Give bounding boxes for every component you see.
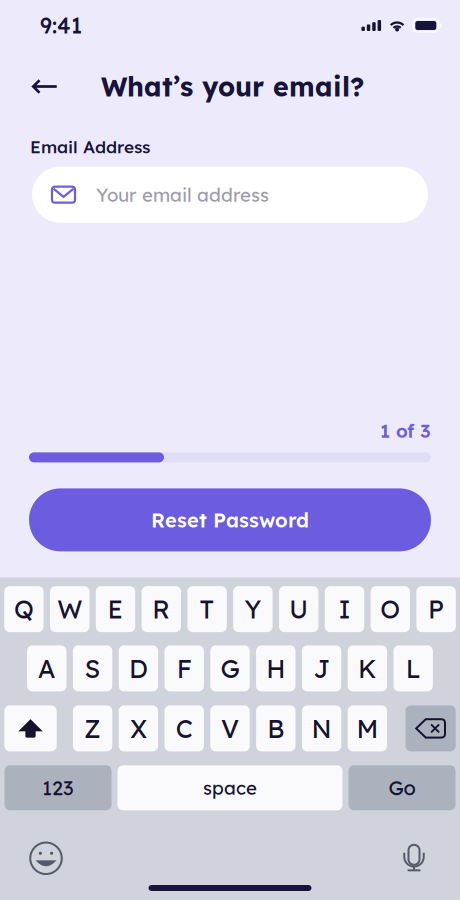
button[interactable]: G (210, 645, 250, 691)
staticText: S (85, 653, 101, 684)
staticText: V (221, 713, 239, 744)
button[interactable]: T (187, 586, 227, 632)
staticText: Your email address (96, 183, 269, 206)
staticText: Reset Password (151, 507, 309, 532)
button[interactable]: R (142, 586, 181, 632)
staticText: C (176, 713, 193, 744)
button[interactable]: V (210, 705, 250, 751)
button[interactable]: L (393, 645, 433, 691)
button[interactable]: O (371, 586, 410, 632)
staticText: Email Address (30, 136, 150, 158)
button[interactable]: Q (4, 586, 44, 632)
button[interactable]: Go (348, 765, 455, 810)
staticText: Y (244, 593, 261, 625)
staticText: Z (84, 713, 101, 744)
button[interactable]: H (256, 645, 295, 691)
staticText: W (57, 593, 82, 625)
button[interactable]: C (164, 705, 204, 751)
staticText: J (314, 653, 330, 684)
button[interactable]: D (119, 645, 158, 691)
staticText: X (130, 713, 147, 744)
button[interactable]: Delete (405, 705, 456, 751)
staticText: D (129, 653, 148, 684)
staticText: 9:41 (40, 12, 82, 39)
staticText: N (312, 713, 332, 744)
button[interactable]: S (73, 645, 112, 691)
button[interactable]: F (164, 645, 204, 691)
staticText: 123 (42, 775, 74, 800)
button[interactable]: B (256, 705, 295, 751)
button[interactable]: I (325, 586, 364, 632)
staticText: K (358, 653, 377, 684)
staticText: O (380, 593, 400, 625)
button[interactable]: Dictation (391, 835, 437, 881)
staticText: Q (14, 593, 34, 625)
button[interactable]: Y (233, 586, 273, 632)
button[interactable]: 123 (4, 765, 111, 810)
button[interactable]: P (416, 586, 456, 632)
button[interactable]: N (302, 705, 341, 751)
button[interactable]: W (50, 586, 89, 632)
staticText: R (152, 593, 170, 625)
staticText: space (203, 776, 257, 799)
staticText: B (267, 713, 284, 744)
staticText: M (356, 713, 378, 744)
staticText: I (338, 593, 350, 625)
button[interactable]: J (302, 645, 341, 691)
button[interactable]: Shift (4, 705, 57, 751)
staticText: P (428, 593, 444, 625)
staticText: H (266, 653, 285, 684)
button[interactable]: K (348, 645, 387, 691)
staticText: G (220, 653, 239, 684)
button[interactable]: X (119, 705, 158, 751)
button[interactable]: M (348, 705, 387, 751)
staticText: A (38, 653, 56, 684)
button[interactable]: E (96, 586, 135, 632)
staticText: F (177, 653, 192, 684)
button[interactable]: Emoji keyboard (23, 835, 69, 881)
button[interactable]: A (27, 645, 66, 691)
staticText: U (289, 593, 308, 625)
staticText: L (406, 653, 421, 684)
staticText: What’s your email? (101, 70, 364, 103)
button[interactable]: Z (73, 705, 112, 751)
button[interactable]: Back (23, 64, 67, 108)
staticText: E (107, 593, 123, 625)
staticText: 1 of 3 (380, 419, 431, 442)
button[interactable]: Reset Password (29, 488, 431, 551)
button[interactable]: space (117, 765, 342, 810)
button[interactable]: U (279, 586, 318, 632)
staticText: Go (388, 775, 415, 800)
staticText: T (200, 593, 215, 625)
